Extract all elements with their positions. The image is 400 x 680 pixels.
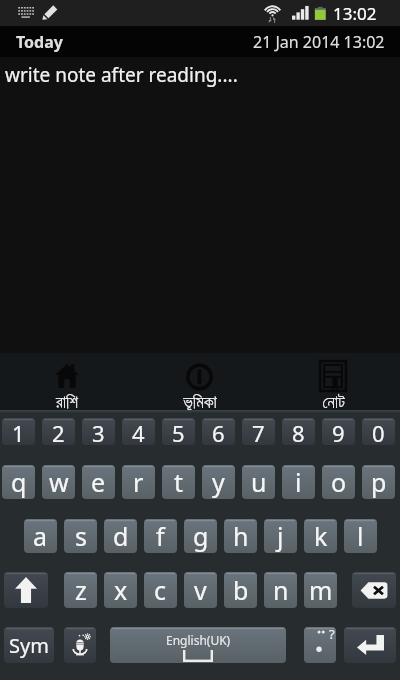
staticText: ভূমিকা [183, 394, 217, 411]
button[interactable]: w [42, 465, 75, 499]
staticText: y [212, 465, 225, 499]
button[interactable]: 0 [362, 418, 395, 445]
staticText: English(UK) [166, 632, 231, 648]
button[interactable]: Shift [4, 572, 48, 608]
button[interactable]: h [224, 519, 257, 553]
button[interactable]: Enter [344, 627, 396, 663]
staticText: 6 [212, 418, 225, 445]
button[interactable]: Sym [4, 627, 54, 663]
staticText: s [75, 519, 87, 553]
button[interactable]: k [304, 519, 337, 553]
button[interactable]: b [224, 572, 257, 608]
staticText: 4 [132, 418, 145, 445]
button[interactable]: s [64, 519, 97, 553]
button[interactable]: 1 [2, 418, 35, 445]
button[interactable]: t [162, 465, 195, 499]
staticText: n [273, 573, 289, 607]
button[interactable]: a [24, 519, 57, 553]
button[interactable]: Period [304, 627, 336, 663]
staticText: 5 [172, 418, 185, 445]
staticText: u [251, 465, 267, 499]
staticText: f [156, 519, 165, 553]
staticText: 21 Jan 2014 13:02 [253, 31, 385, 53]
button[interactable]: f [144, 519, 177, 553]
button[interactable]: n [264, 572, 297, 608]
staticText: h [233, 519, 249, 553]
button[interactable]: c [144, 572, 177, 608]
button[interactable]: q [2, 465, 35, 499]
button[interactable]: 2 [42, 418, 75, 445]
button[interactable]: e [82, 465, 115, 499]
staticText: 2 [52, 418, 65, 445]
button[interactable]: 9 [322, 418, 355, 445]
staticText: 3 [92, 418, 105, 445]
staticText: z [75, 573, 87, 607]
staticText: g [193, 519, 209, 553]
staticText: Today [16, 31, 63, 53]
button[interactable]: y [202, 465, 235, 499]
staticText: w [49, 465, 69, 499]
button[interactable]: রাশি [0, 353, 133, 410]
button[interactable]: o [322, 465, 355, 499]
button[interactable]: i [282, 465, 315, 499]
button[interactable]: z [64, 572, 97, 608]
staticText: e [91, 465, 106, 499]
staticText: r [133, 465, 144, 499]
staticText: q [11, 465, 27, 499]
button[interactable]: g [184, 519, 217, 553]
button[interactable]: x [104, 572, 137, 608]
button[interactable]: Backspace [352, 572, 396, 608]
staticText: রাশি [56, 394, 78, 411]
staticText: 1 [12, 418, 25, 445]
button[interactable]: Space [110, 627, 286, 663]
button[interactable]: 4 [122, 418, 155, 445]
button[interactable]: j [264, 519, 297, 553]
button[interactable]: d [104, 519, 137, 553]
staticText: t [174, 465, 184, 499]
button[interactable]: v [184, 572, 217, 608]
button[interactable]: m [304, 572, 337, 608]
staticText: x [114, 573, 128, 607]
staticText: i [295, 465, 302, 499]
button[interactable]: p [362, 465, 395, 499]
button[interactable]: নোট [266, 353, 400, 410]
staticText: k [314, 519, 328, 553]
staticText: নোট [322, 394, 345, 411]
staticText: ? [329, 627, 335, 643]
staticText: 8 [292, 418, 305, 445]
staticText: a [33, 519, 48, 553]
staticText: v [194, 573, 207, 607]
staticText: 13:02 [333, 2, 377, 25]
staticText: l [357, 519, 364, 553]
staticText: p [371, 465, 387, 499]
staticText: 0 [372, 418, 385, 445]
button[interactable]: 3 [82, 418, 115, 445]
button[interactable]: l [344, 519, 377, 553]
staticText: Sym [9, 632, 49, 659]
staticText: c [154, 573, 167, 607]
staticText: d [113, 519, 129, 553]
button[interactable]: ভূমিকা [133, 353, 266, 410]
button[interactable]: r [122, 465, 155, 499]
staticText: j [277, 519, 284, 553]
staticText: b [233, 573, 249, 607]
staticText: 7 [252, 418, 265, 445]
button[interactable]: Voice input [64, 627, 96, 663]
staticText: 9 [332, 418, 345, 445]
button[interactable]: 7 [242, 418, 275, 445]
staticText: o [331, 465, 347, 499]
button[interactable]: 5 [162, 418, 195, 445]
button[interactable]: 8 [282, 418, 315, 445]
button[interactable]: 6 [202, 418, 235, 445]
button[interactable]: u [242, 465, 275, 499]
staticText: write note after reading.... [5, 62, 238, 88]
staticText: m [309, 573, 333, 607]
